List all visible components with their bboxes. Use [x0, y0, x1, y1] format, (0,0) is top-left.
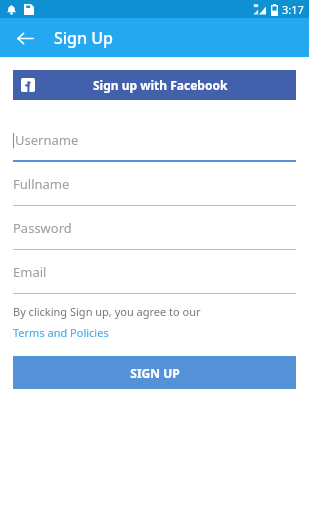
staticText: Terms and Policies: [13, 325, 109, 340]
button[interactable]: SIGN UP: [13, 356, 296, 389]
staticText: Username: [15, 131, 79, 149]
button[interactable]: Terms and Policies: [13, 325, 109, 340]
staticText: Fullname: [13, 175, 70, 193]
staticText: By clicking Sign up, you agree to our: [13, 304, 201, 319]
staticText: Email: [13, 263, 47, 281]
staticText: Sign up with Facebook: [93, 77, 228, 93]
button[interactable]: Fullname: [13, 162, 296, 206]
staticText: 3:17: [282, 2, 304, 17]
button[interactable]: Email: [13, 250, 296, 294]
button[interactable]: Sign up with Facebook: [13, 70, 296, 100]
button[interactable]: Password: [13, 206, 296, 250]
staticText: Password: [13, 219, 72, 237]
staticText: SIGN UP: [130, 365, 180, 381]
button[interactable]: Back: [10, 23, 40, 53]
staticText: Sign Up: [54, 27, 113, 49]
button[interactable]: Username: [13, 118, 296, 162]
